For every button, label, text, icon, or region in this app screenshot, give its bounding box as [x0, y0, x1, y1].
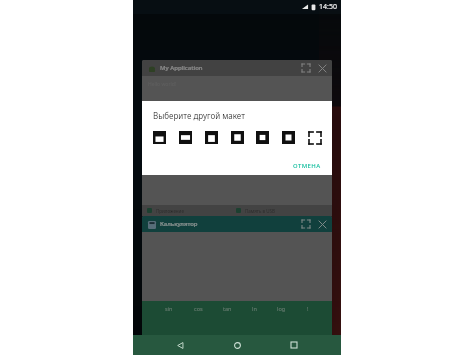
button[interactable]: Во весь экран	[298, 216, 314, 232]
button[interactable]: sin	[164, 305, 174, 312]
button[interactable]: Во весь экран	[307, 130, 322, 145]
staticText: !	[307, 305, 309, 312]
button[interactable]: Макет	[230, 130, 245, 145]
staticText: My Application	[160, 64, 203, 72]
button[interactable]: Макет	[255, 130, 270, 145]
staticText: Память в USB	[245, 208, 275, 214]
button[interactable]: Макет	[281, 130, 296, 145]
staticText: 14:50	[319, 2, 337, 12]
button[interactable]: Обзор	[284, 335, 304, 355]
button[interactable]: Назад	[170, 335, 190, 355]
button[interactable]: tan	[222, 305, 233, 312]
staticText: Выберите другой макет	[153, 110, 245, 121]
button[interactable]: Закрыть	[314, 60, 330, 76]
button[interactable]: Калькулятор	[142, 216, 332, 335]
staticText: ОТМЕНА	[293, 162, 321, 170]
button[interactable]: ОТМЕНА	[282, 157, 332, 175]
staticText: sin	[165, 305, 173, 312]
button[interactable]: Во весь экран	[298, 60, 314, 76]
button[interactable]: Закрыть	[314, 216, 330, 232]
staticText: ln	[252, 305, 257, 312]
staticText: Приложение	[156, 208, 184, 214]
button[interactable]: Главный экран	[227, 335, 247, 355]
button[interactable]: ln	[251, 305, 258, 312]
button[interactable]: Макет	[178, 130, 193, 145]
button[interactable]: My Application	[142, 60, 332, 205]
button[interactable]: Макет	[152, 130, 167, 145]
staticText: Калькулятор	[160, 220, 198, 228]
staticText: log	[277, 305, 286, 312]
button[interactable]: log	[276, 305, 287, 312]
button[interactable]: Макет	[204, 130, 219, 145]
staticText: cos	[194, 305, 203, 312]
staticText: tan	[223, 305, 232, 312]
button[interactable]: cos	[193, 305, 204, 312]
button[interactable]: !	[306, 305, 310, 312]
